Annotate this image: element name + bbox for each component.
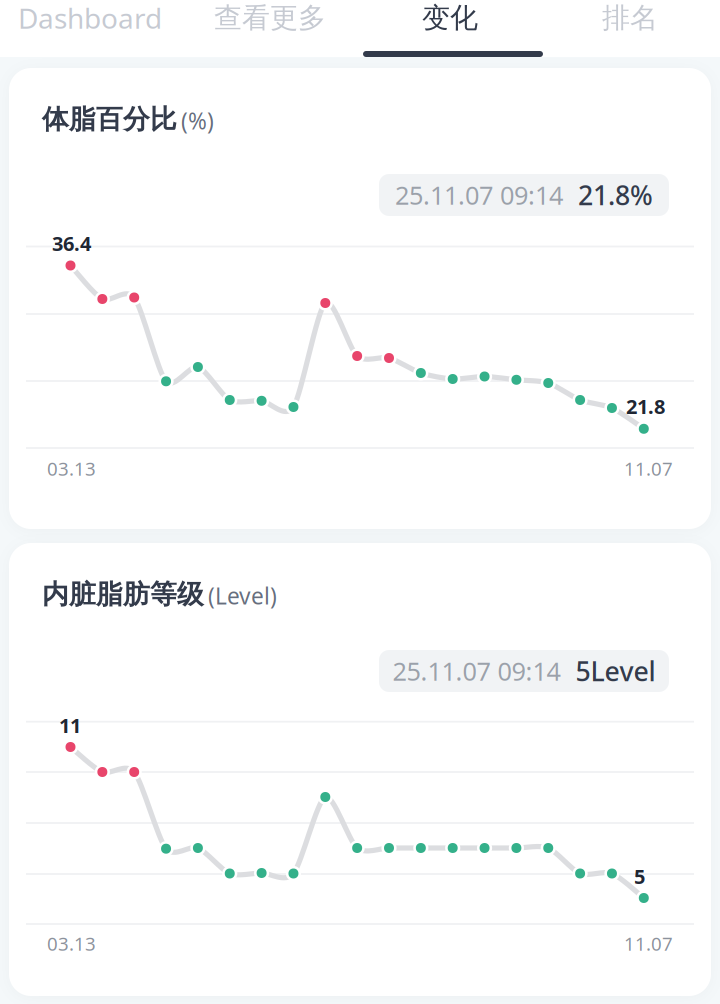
button[interactable]: 排名 xyxy=(540,0,720,57)
staticText: (%) xyxy=(181,106,214,136)
staticText: 36.4 xyxy=(52,230,91,257)
staticText: 排名 xyxy=(602,1,658,35)
staticText: 变化 xyxy=(422,1,478,35)
staticText: 25.11.07 09:14 xyxy=(395,178,563,212)
staticText: 体脂百分比 xyxy=(42,103,177,136)
staticText: 25.11.07 09:14 xyxy=(392,654,560,688)
staticText: 11.07 xyxy=(624,931,673,956)
staticText: 5 xyxy=(634,863,645,890)
staticText: 03.13 xyxy=(47,931,96,956)
staticText: (Level) xyxy=(208,581,277,611)
staticText: 21.8 xyxy=(626,393,665,420)
staticText: 5Level xyxy=(575,653,655,689)
staticText: 查看更多 xyxy=(214,1,326,35)
staticText: 11.07 xyxy=(624,456,673,481)
button[interactable]: Dashboard xyxy=(0,0,180,57)
button[interactable]: 变化 xyxy=(360,0,540,57)
staticText: 03.13 xyxy=(47,456,96,481)
staticText: 内脏脂肪等级 xyxy=(42,578,204,611)
staticText: 11 xyxy=(59,712,81,739)
staticText: Dashboard xyxy=(18,0,162,37)
staticText: 21.8% xyxy=(578,177,653,213)
button[interactable]: 查看更多 xyxy=(180,0,360,57)
